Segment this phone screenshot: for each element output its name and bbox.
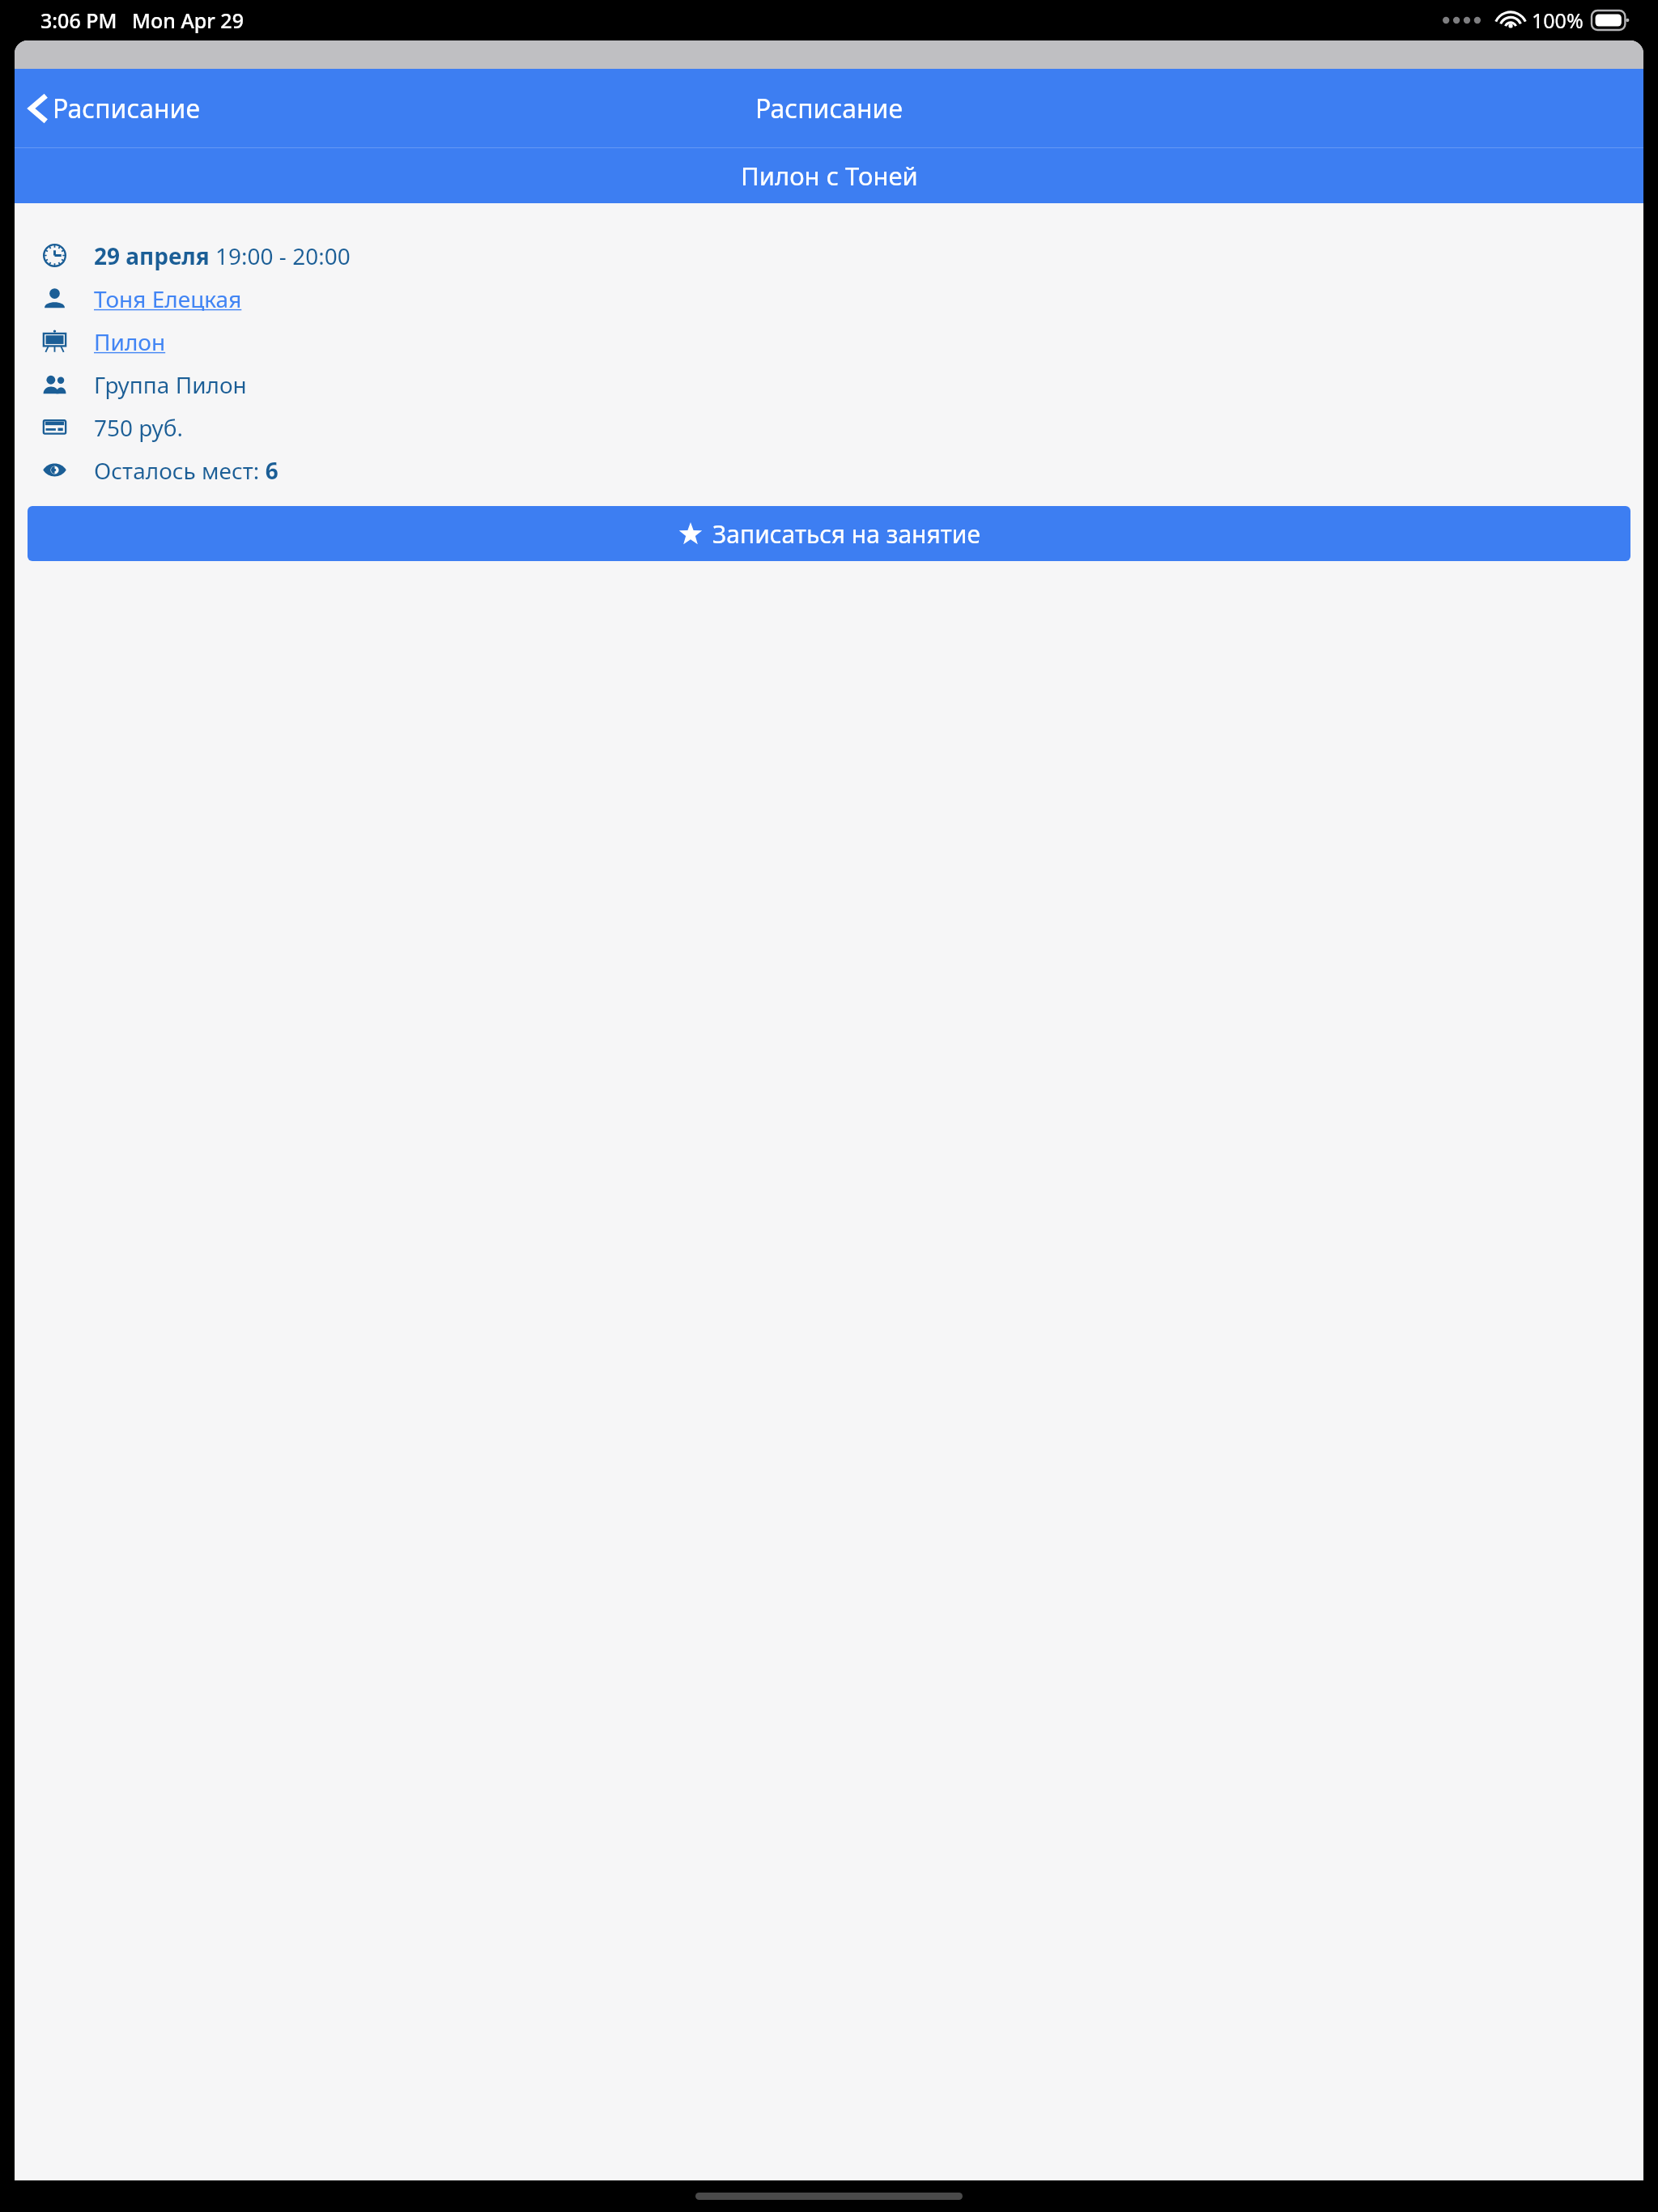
staticText: Осталось мест: 6 — [94, 455, 278, 486]
staticText: Записаться на занятие — [712, 517, 980, 551]
staticText: Mon Apr 29 — [132, 6, 244, 34]
button[interactable]: Тоня Елецкая — [15, 277, 1643, 320]
button[interactable]: Осталось мест: 6 — [15, 449, 1643, 491]
staticText: 100% — [1532, 6, 1584, 34]
button[interactable]: Пилон — [15, 320, 1643, 363]
staticText: Группа Пилон — [94, 369, 247, 400]
button[interactable]: Back — [15, 84, 214, 133]
staticText: Расписание — [755, 91, 903, 126]
staticText: Пилон с Тоней — [741, 159, 918, 193]
button[interactable]: Группа Пилон — [15, 363, 1643, 406]
other: Back — [28, 94, 45, 123]
staticText: 750 руб. — [94, 412, 183, 443]
button[interactable]: Записаться на занятие — [28, 506, 1630, 561]
button[interactable]: 29 апреля 19:00 - 20:00 — [15, 234, 1643, 277]
staticText: 29 апреля 19:00 - 20:00 — [94, 240, 351, 271]
staticText: 3:06 PM — [40, 6, 117, 34]
staticText: Расписание — [53, 91, 201, 126]
button[interactable]: Тоня Елецкая — [94, 283, 242, 314]
button[interactable]: Пилон — [94, 326, 166, 357]
button[interactable]: 750 руб. — [15, 406, 1643, 449]
